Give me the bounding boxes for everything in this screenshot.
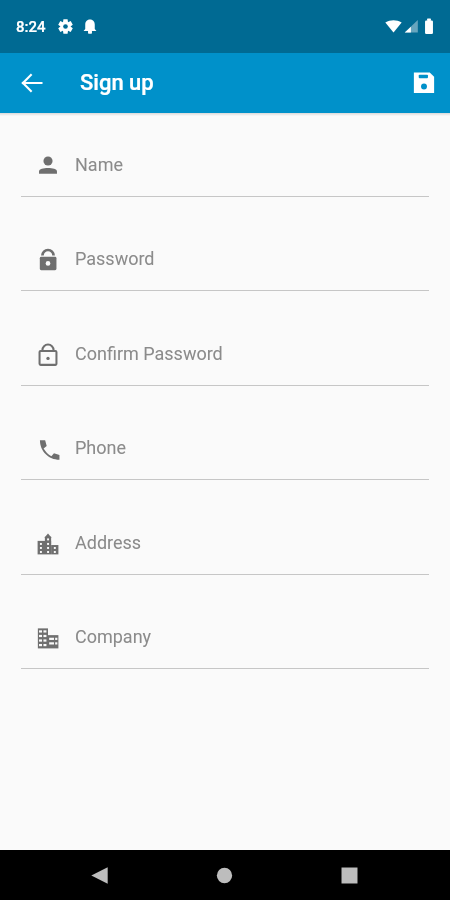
- button[interactable]: Name: [0, 114, 450, 197]
- button[interactable]: Back: [11, 62, 53, 104]
- staticText: Company: [75, 626, 152, 647]
- button[interactable]: Home: [202, 853, 247, 898]
- button[interactable]: Save: [403, 62, 445, 104]
- staticText: 8:24: [16, 18, 46, 36]
- staticText: Sign up: [80, 70, 154, 96]
- button[interactable]: Back: [77, 853, 122, 898]
- staticText: Password: [75, 248, 155, 269]
- button[interactable]: Address: [0, 492, 450, 575]
- staticText: Name: [75, 154, 123, 175]
- staticText: Phone: [75, 437, 127, 458]
- staticText: Confirm Password: [75, 343, 223, 364]
- staticText: Address: [75, 532, 142, 553]
- button[interactable]: Company: [0, 586, 450, 669]
- button[interactable]: Password: [0, 208, 450, 291]
- button[interactable]: Confirm Password: [0, 303, 450, 386]
- button[interactable]: Recents: [327, 853, 372, 898]
- button[interactable]: Phone: [0, 397, 450, 480]
